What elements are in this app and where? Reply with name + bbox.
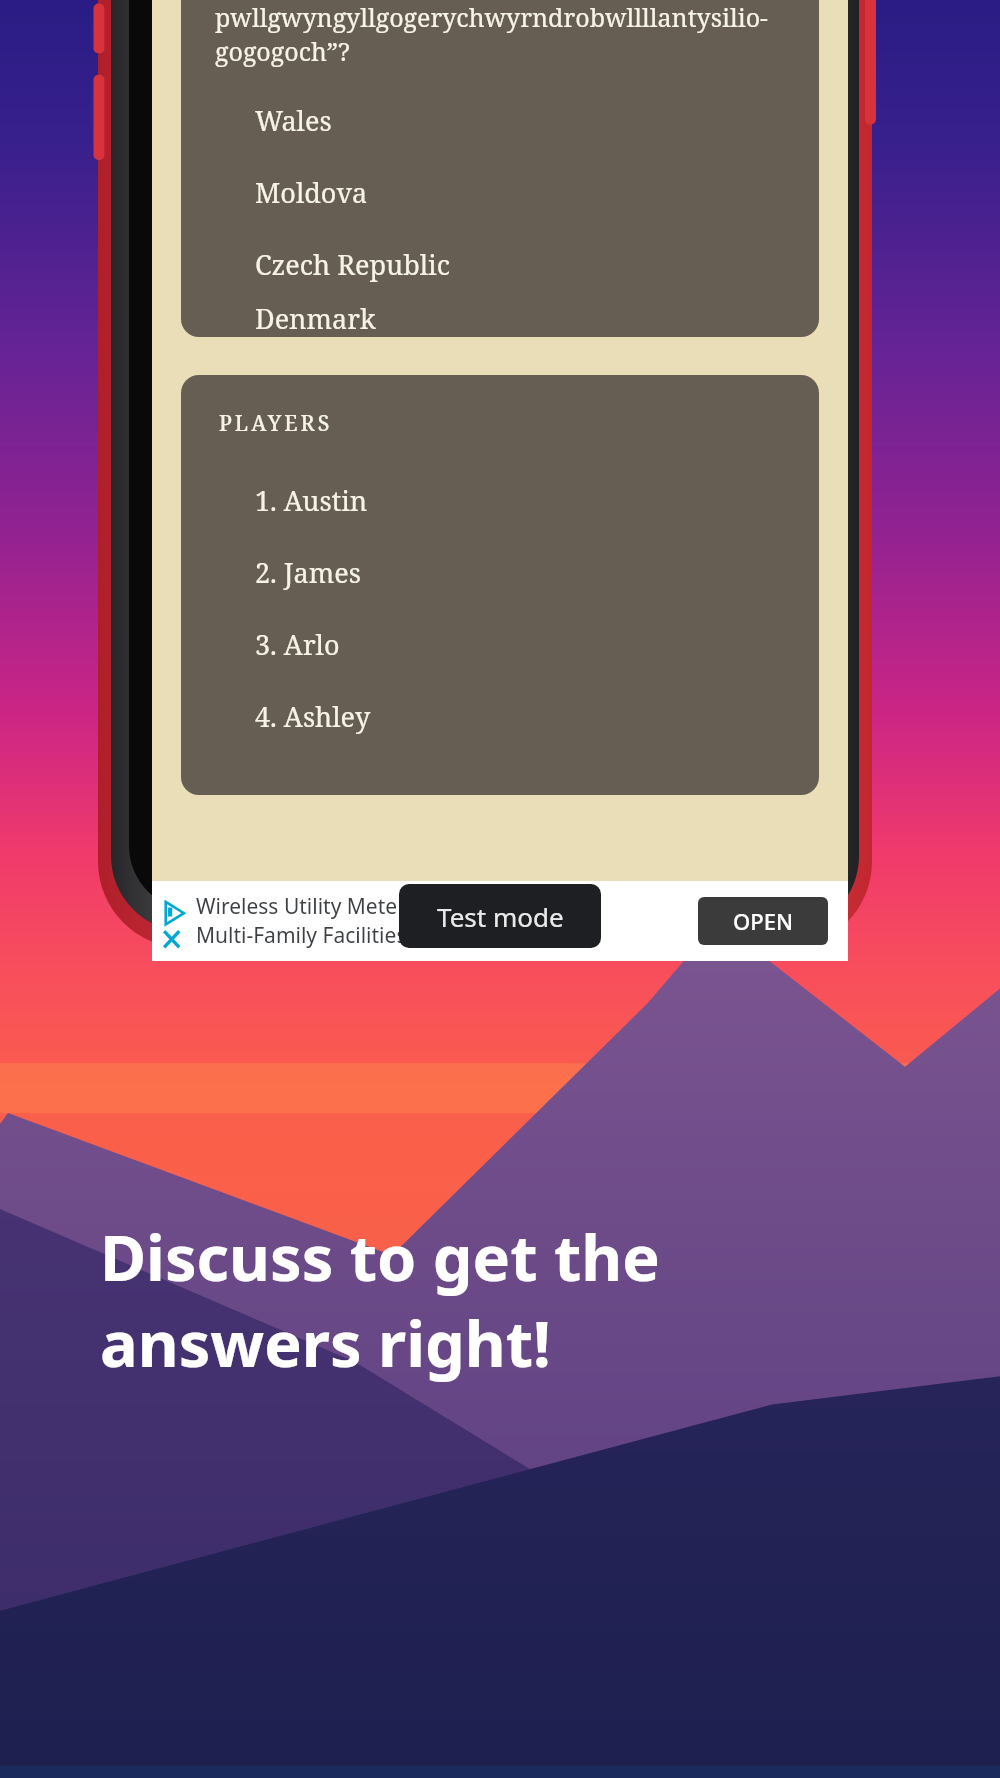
button[interactable]: 1. Austin (181, 464, 819, 536)
button[interactable]: pwllgwyngyllgogerychwyrndrobwllllantysil… (181, 0, 819, 337)
staticText: Denmark (255, 300, 376, 337)
button[interactable]: Wales (181, 84, 819, 156)
staticText: PLAYERS (219, 409, 333, 438)
button[interactable]: Ad choices (160, 893, 186, 949)
staticText: Moldova (255, 174, 368, 211)
staticText: 1. Austin (255, 482, 368, 519)
button[interactable]: 4. Ashley (181, 680, 819, 752)
staticText: Wales (255, 102, 332, 139)
button[interactable]: 3. Arlo (181, 608, 819, 680)
button[interactable]: 2. James (181, 536, 819, 608)
staticText: Multi-Family Facilities (196, 921, 407, 950)
button[interactable]: PLAYERS (181, 375, 819, 795)
staticText: 4. Ashley (255, 698, 371, 735)
staticText: gogogoch”? (215, 34, 350, 68)
staticText: 2. James (255, 554, 361, 591)
staticText: Czech Republic (255, 246, 451, 283)
button[interactable]: Moldova (181, 156, 819, 228)
staticText: answers right! (100, 1300, 551, 1386)
staticText: OPEN (733, 906, 793, 936)
staticText: pwllgwyngyllgogerychwyrndrobwllllantysil… (215, 0, 768, 34)
button[interactable]: Denmark (181, 300, 819, 337)
staticText: Discuss to get the (100, 1214, 660, 1300)
button[interactable]: Czech Republic (181, 228, 819, 300)
staticText: Test mode (437, 899, 564, 934)
staticText: Wireless Utility Metering for (196, 892, 472, 921)
button[interactable]: OPEN (698, 897, 828, 945)
staticText: 3. Arlo (255, 626, 340, 663)
